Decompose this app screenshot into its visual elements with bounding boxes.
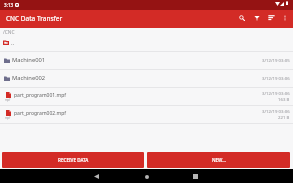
staticText: part_program002.mpf [14, 110, 66, 117]
staticText: .. [11, 39, 15, 47]
staticText: Machine001 [12, 56, 46, 64]
button[interactable]: Home [140, 170, 153, 183]
button[interactable]: Machine001 [0, 52, 293, 69]
button[interactable]: RECEIVE DATA [2, 152, 144, 168]
staticText: 3/12/19 03:06 [262, 75, 290, 81]
staticText: 3:13 [4, 2, 14, 8]
staticText: mpf [5, 116, 11, 120]
button[interactable]: More options [279, 12, 290, 23]
button[interactable]: Machine002 [0, 70, 293, 87]
staticText: 3/12/19 03:05 [262, 57, 290, 63]
button[interactable]: mpf [0, 106, 293, 123]
staticText: 163 B [278, 96, 290, 102]
staticText: RECEIVE DATA [58, 157, 89, 163]
button[interactable]: Search [236, 12, 247, 23]
staticText: CNC Data Transfer [6, 14, 63, 23]
button[interactable]: Sort [266, 12, 277, 23]
button[interactable]: NEW... [147, 152, 290, 168]
staticText: 3/12/19 03:06 [262, 108, 290, 114]
button[interactable]: Recents [189, 170, 202, 183]
staticText: mpf [5, 98, 11, 102]
staticText: NEW... [212, 157, 226, 163]
staticText: part_program001.mpf [14, 92, 66, 99]
button[interactable]: Back [90, 170, 103, 183]
button[interactable]: .. [0, 34, 293, 51]
button[interactable]: Filter [251, 12, 262, 23]
staticText: Machine002 [12, 74, 46, 82]
button[interactable]: mpf [0, 88, 293, 105]
staticText: 221 B [278, 114, 290, 120]
staticText: 3/12/19 03:06 [262, 90, 290, 96]
staticText: /CNC [3, 29, 15, 35]
